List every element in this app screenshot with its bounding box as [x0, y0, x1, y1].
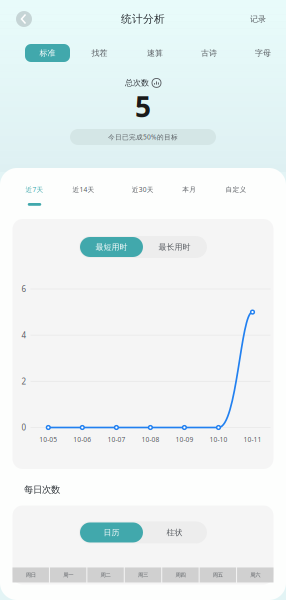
staticText: 古诗: [201, 48, 217, 58]
button[interactable]: 近30天: [120, 184, 166, 210]
staticText: 10-09: [175, 435, 193, 444]
button[interactable]: 最短用时: [80, 237, 143, 257]
button[interactable]: 返回: [8, 4, 40, 34]
button[interactable]: 日历: [80, 522, 143, 542]
staticText: 字母: [255, 48, 271, 58]
button[interactable]: 古诗: [187, 44, 231, 62]
staticText: 统计分析: [121, 12, 165, 25]
staticText: 今日已完成50%的目标: [108, 133, 178, 141]
button[interactable]: 近7天: [11, 184, 57, 210]
staticText: 本月: [182, 185, 196, 194]
button[interactable]: 记录: [238, 4, 278, 34]
staticText: 速算: [147, 48, 163, 58]
button[interactable]: 标准: [25, 44, 70, 62]
staticText: 4: [21, 330, 26, 340]
staticText: 周五: [213, 572, 223, 578]
staticText: 近7天: [25, 185, 43, 194]
button[interactable]: 找茬: [77, 44, 121, 62]
staticText: 10-10: [209, 435, 227, 444]
staticText: 自定义: [225, 185, 246, 194]
staticText: 周二: [101, 572, 111, 578]
staticText: 10-08: [141, 435, 159, 444]
staticText: 6: [21, 284, 26, 294]
staticText: 最长用时: [158, 242, 190, 252]
staticText: 周一: [63, 572, 73, 578]
staticText: 10-05: [39, 435, 57, 444]
staticText: 2: [21, 376, 26, 387]
staticText: 近30天: [132, 185, 154, 194]
button[interactable]: 本月: [166, 184, 212, 210]
staticText: 记录: [250, 14, 266, 24]
staticText: 找茬: [91, 48, 107, 58]
staticText: 5: [135, 88, 151, 125]
staticText: 总次数: [125, 78, 149, 88]
button[interactable]: 速算: [133, 44, 177, 62]
staticText: 最短用时: [95, 242, 127, 252]
staticText: 周四: [175, 572, 185, 578]
button[interactable]: 近14天: [61, 184, 107, 210]
staticText: 近14天: [73, 185, 95, 194]
staticText: 周六: [250, 572, 260, 578]
staticText: 周三: [138, 572, 148, 578]
staticText: 0: [21, 422, 26, 433]
staticText: 周日: [26, 572, 36, 578]
button[interactable]: 自定义: [213, 184, 259, 210]
button[interactable]: 柱状: [143, 522, 206, 542]
staticText: 标准: [39, 48, 55, 58]
staticText: 10-06: [73, 435, 91, 444]
button[interactable]: 字母: [241, 44, 285, 62]
button[interactable]: 最长用时: [143, 237, 206, 257]
staticText: 10-07: [107, 435, 125, 444]
staticText: 柱状: [166, 528, 182, 537]
staticText: 每日次数: [24, 484, 60, 495]
staticText: 日历: [103, 528, 119, 537]
staticText: 10-11: [243, 435, 261, 444]
